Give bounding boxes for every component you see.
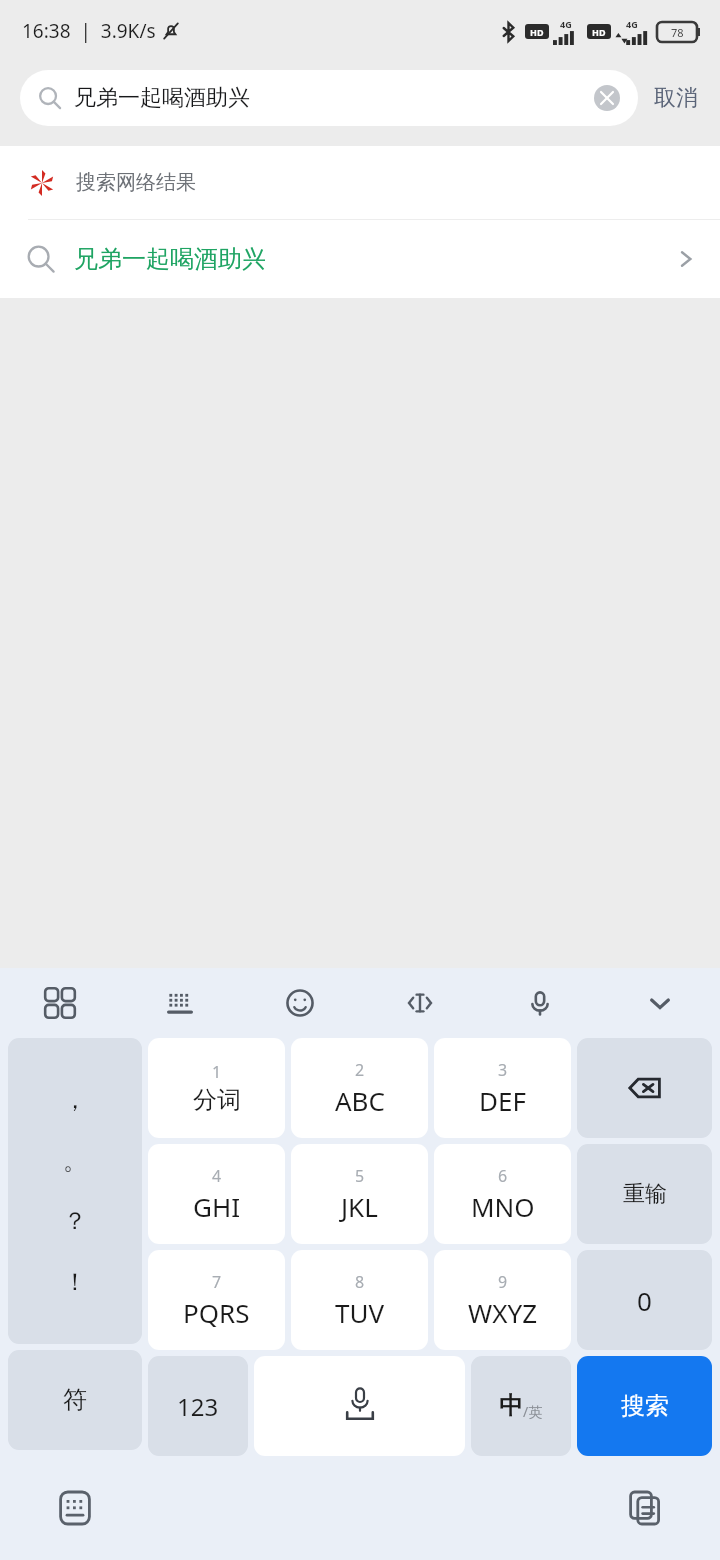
- staticText: 6: [498, 1165, 508, 1187]
- staticText: HD: [530, 26, 544, 38]
- button[interactable]: Keyboard layout: [120, 968, 240, 1038]
- staticText: 78: [671, 25, 684, 40]
- button[interactable]: 8: [291, 1250, 428, 1350]
- button[interactable]: 兄弟一起喝酒助兴: [0, 220, 720, 298]
- other: Search: [38, 86, 62, 110]
- button[interactable]: Space: [254, 1356, 465, 1456]
- staticText: 7: [212, 1271, 222, 1293]
- staticText: GHI: [193, 1189, 241, 1224]
- button[interactable]: Switch keyboard: [48, 1481, 102, 1535]
- staticText: 搜索: [621, 1391, 669, 1421]
- staticText: 兄弟一起喝酒助兴: [74, 244, 676, 274]
- button[interactable]: Search: [20, 70, 638, 126]
- button[interactable]: 7: [148, 1250, 285, 1350]
- staticText: TUV: [335, 1295, 385, 1330]
- button[interactable]: 重输: [577, 1144, 712, 1244]
- button[interactable]: 123: [148, 1356, 248, 1456]
- staticText: 取消: [654, 84, 698, 112]
- button[interactable]: ，: [8, 1038, 142, 1344]
- staticText: 中: [499, 1391, 523, 1421]
- staticText: HD: [592, 26, 606, 38]
- button[interactable]: 3: [434, 1038, 571, 1138]
- staticText: 兄弟一起喝酒助兴: [74, 84, 594, 112]
- staticText: 123: [177, 1390, 219, 1423]
- button[interactable]: Clear: [594, 85, 620, 111]
- staticText: 符: [63, 1385, 87, 1415]
- button[interactable]: 0: [577, 1250, 712, 1350]
- button[interactable]: 6: [434, 1144, 571, 1244]
- button[interactable]: 取消: [638, 84, 700, 112]
- staticText: ，: [63, 1085, 87, 1115]
- button[interactable]: 1: [148, 1038, 285, 1138]
- button[interactable]: Edit cursor: [360, 968, 480, 1038]
- staticText: ？: [63, 1206, 87, 1236]
- staticText: WXYZ: [468, 1295, 538, 1330]
- staticText: 5: [355, 1165, 365, 1187]
- staticText: 4: [212, 1165, 222, 1187]
- staticText: 重输: [623, 1180, 667, 1208]
- staticText: PQRS: [183, 1295, 250, 1330]
- button[interactable]: 符: [8, 1350, 142, 1450]
- staticText: 3: [498, 1059, 508, 1081]
- button[interactable]: 9: [434, 1250, 571, 1350]
- button[interactable]: 4: [148, 1144, 285, 1244]
- button[interactable]: Hide keyboard: [600, 968, 720, 1038]
- staticText: 4G: [626, 18, 638, 30]
- staticText: DEF: [479, 1083, 526, 1118]
- staticText: 0: [637, 1283, 652, 1318]
- staticText: 。: [63, 1146, 87, 1176]
- staticText: 搜索网络结果: [76, 170, 196, 195]
- staticText: 1: [212, 1061, 222, 1083]
- button[interactable]: Emoji: [240, 968, 360, 1038]
- staticText: 9: [498, 1271, 508, 1293]
- button[interactable]: 中: [471, 1356, 571, 1456]
- staticText: MNO: [471, 1189, 535, 1224]
- button[interactable]: Backspace: [577, 1038, 712, 1138]
- button[interactable]: 搜索网络结果: [0, 146, 720, 219]
- staticText: ABC: [335, 1083, 385, 1118]
- staticText: 16:38 | 3.9K/s: [22, 18, 156, 44]
- staticText: JKL: [341, 1189, 378, 1224]
- button[interactable]: Apps: [0, 968, 120, 1038]
- button[interactable]: Clipboard: [618, 1481, 672, 1535]
- button[interactable]: 5: [291, 1144, 428, 1244]
- staticText: ！: [63, 1267, 87, 1297]
- staticText: 分词: [193, 1085, 241, 1115]
- staticText: 8: [355, 1271, 365, 1293]
- staticText: /英: [523, 1402, 543, 1421]
- staticText: 4G: [560, 18, 572, 30]
- button[interactable]: 搜索: [577, 1356, 712, 1456]
- staticText: 2: [355, 1059, 365, 1081]
- button[interactable]: Voice input: [480, 968, 600, 1038]
- button[interactable]: 2: [291, 1038, 428, 1138]
